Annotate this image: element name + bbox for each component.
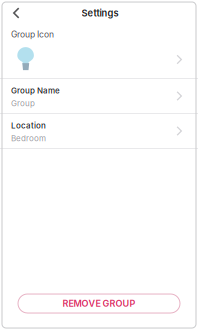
button[interactable]: REMOVE GROUP: [18, 294, 180, 313]
staticText: Location: [11, 121, 46, 130]
button[interactable]: Location: [0, 114, 198, 148]
staticText: Group Name: [11, 86, 60, 95]
staticText: REMOVE GROUP: [62, 298, 135, 309]
button[interactable]: Group Icon: [0, 45, 198, 78]
staticText: Settings: [81, 7, 118, 19]
staticText: Bedroom: [11, 133, 46, 143]
button[interactable]: Group Name: [0, 79, 198, 113]
staticText: Group Icon: [11, 29, 54, 40]
staticText: Group: [11, 98, 35, 108]
button[interactable]: Back: [0, 0, 30, 24]
